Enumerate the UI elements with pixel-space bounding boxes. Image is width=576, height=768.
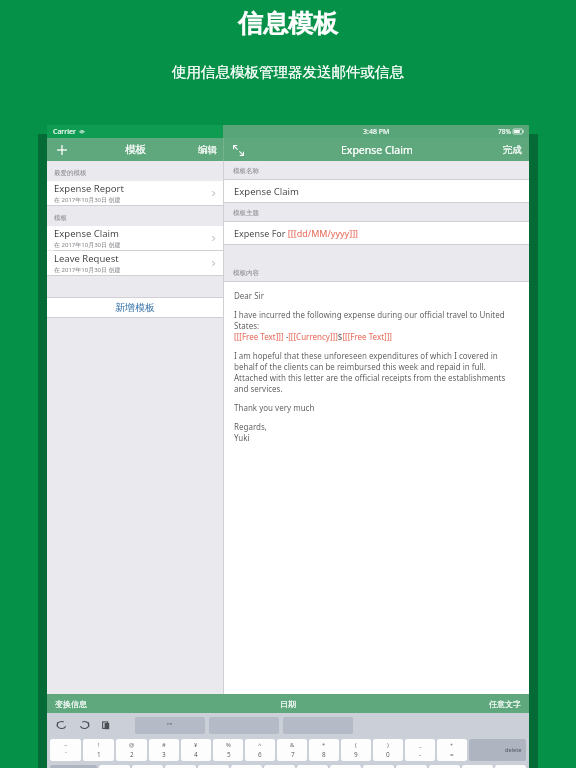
staticText: Carrier xyxy=(53,127,76,137)
button[interactable]: { xyxy=(429,765,460,768)
staticText: Thank you very much xyxy=(234,402,315,413)
button[interactable]: Redo xyxy=(73,714,95,736)
button[interactable]: # xyxy=(149,739,179,761)
staticText: Regards, Yuki xyxy=(234,421,267,443)
staticText: delete xyxy=(505,746,522,754)
staticText: I am hopeful that these unforeseen expen… xyxy=(234,350,519,394)
staticText: ! xyxy=(98,741,100,749)
staticText: ` xyxy=(65,750,67,759)
staticText: 0 xyxy=(386,750,390,759)
staticText: % xyxy=(226,741,231,749)
staticText: I have incurred the following expense du… xyxy=(234,309,519,342)
button[interactable]: * xyxy=(309,739,339,761)
button[interactable]: ( xyxy=(341,739,371,761)
button[interactable]: delete xyxy=(469,739,526,761)
staticText: 任意文字 xyxy=(489,699,521,709)
staticText: Leave Request xyxy=(54,252,119,265)
button[interactable]: % xyxy=(213,739,243,761)
button[interactable]: Expense Claim xyxy=(224,180,529,202)
button[interactable]: o xyxy=(363,765,394,768)
staticText: @ xyxy=(129,741,135,749)
button[interactable]: 新增模板 xyxy=(47,298,223,317)
staticText: Expense Report xyxy=(54,182,124,195)
button[interactable]: 完成 xyxy=(503,144,522,156)
button[interactable]: ^ xyxy=(245,739,275,761)
button[interactable]: Expense For [[[dd/MM/yyyy]]] xyxy=(224,222,529,244)
staticText: 完成 xyxy=(503,144,522,156)
staticText: 5 xyxy=(227,750,231,759)
staticText: 使用信息模板管理器发送邮件或信息 xyxy=(172,63,404,81)
staticText: ¥ xyxy=(194,741,198,749)
staticText: Expense For [[[dd/MM/yyyy]]] xyxy=(234,227,359,239)
staticText: = xyxy=(450,750,454,759)
staticText: ) xyxy=(387,741,389,749)
button[interactable]: u xyxy=(297,765,328,768)
button[interactable]: ¥ xyxy=(181,739,211,761)
staticText: 模板内容 xyxy=(233,269,259,277)
staticText: 8 xyxy=(322,750,326,759)
button[interactable]: r xyxy=(198,765,229,768)
staticText: * xyxy=(322,741,326,749)
button[interactable]: t xyxy=(231,765,262,768)
button[interactable]: } xyxy=(462,765,493,768)
button[interactable]: | xyxy=(495,765,526,768)
staticText: 模板主题 xyxy=(233,209,259,217)
button[interactable]: ~ xyxy=(50,739,81,761)
staticText: 2 xyxy=(130,750,134,759)
button[interactable]: w xyxy=(132,765,163,768)
staticText: _ xyxy=(419,741,422,749)
staticText: 3 xyxy=(162,750,166,759)
staticText: 在 2017年10月30日 创建 xyxy=(54,196,121,204)
staticText: 日期 xyxy=(280,699,296,709)
staticText: # xyxy=(162,741,166,749)
staticText: 7 xyxy=(291,750,295,759)
staticText: "" xyxy=(167,721,173,730)
staticText: 模板 xyxy=(54,214,67,222)
button[interactable]: 编辑 xyxy=(198,144,217,156)
button[interactable]: 任意文字 xyxy=(489,699,521,709)
staticText: 4 xyxy=(194,750,198,759)
staticText: 新增模板 xyxy=(115,301,155,314)
button[interactable]: _ xyxy=(405,739,435,761)
button[interactable]: tab xyxy=(50,765,97,768)
button[interactable]: ) xyxy=(373,739,403,761)
button[interactable]: & xyxy=(277,739,307,761)
staticText: 模板 xyxy=(125,143,146,156)
button[interactable]: ! xyxy=(83,739,114,761)
button[interactable]: i xyxy=(330,765,361,768)
staticText: 78% xyxy=(498,127,511,136)
staticText: 在 2017年10月30日 创建 xyxy=(54,266,121,274)
staticText: 信息模板 xyxy=(238,8,338,39)
button[interactable]: y xyxy=(264,765,295,768)
button[interactable]: Leave Request xyxy=(47,251,223,275)
staticText: 6 xyxy=(258,750,262,759)
staticText: Expense Claim xyxy=(54,227,119,240)
staticText: 9 xyxy=(354,750,358,759)
staticText: 变换信息 xyxy=(55,699,87,709)
button[interactable]: Expense Claim xyxy=(47,226,223,250)
button[interactable]: 变换信息 xyxy=(55,699,87,709)
staticText: Expense Claim xyxy=(234,185,299,198)
button[interactable]: "" xyxy=(135,717,205,734)
staticText: & xyxy=(290,741,295,749)
staticText: ^ xyxy=(258,741,262,749)
button[interactable]: 新增 xyxy=(52,140,72,160)
button[interactable]: q xyxy=(99,765,130,768)
button[interactable]: e xyxy=(165,765,196,768)
staticText: + xyxy=(450,741,454,749)
button[interactable]: Dear Sir xyxy=(224,282,529,694)
button[interactable]: 全屏 xyxy=(229,141,247,159)
staticText: Expense Claim xyxy=(341,143,413,157)
button[interactable]: p xyxy=(396,765,427,768)
button[interactable]: Paste xyxy=(95,714,117,736)
staticText: 模板名称 xyxy=(233,167,259,175)
button[interactable]: 日期 xyxy=(280,699,296,709)
button[interactable]: + xyxy=(437,739,467,761)
staticText: 3:48 PM xyxy=(363,127,390,137)
button[interactable]: Undo xyxy=(51,714,73,736)
button[interactable]: Expense Report xyxy=(47,181,223,205)
button[interactable]: @ xyxy=(116,739,147,761)
